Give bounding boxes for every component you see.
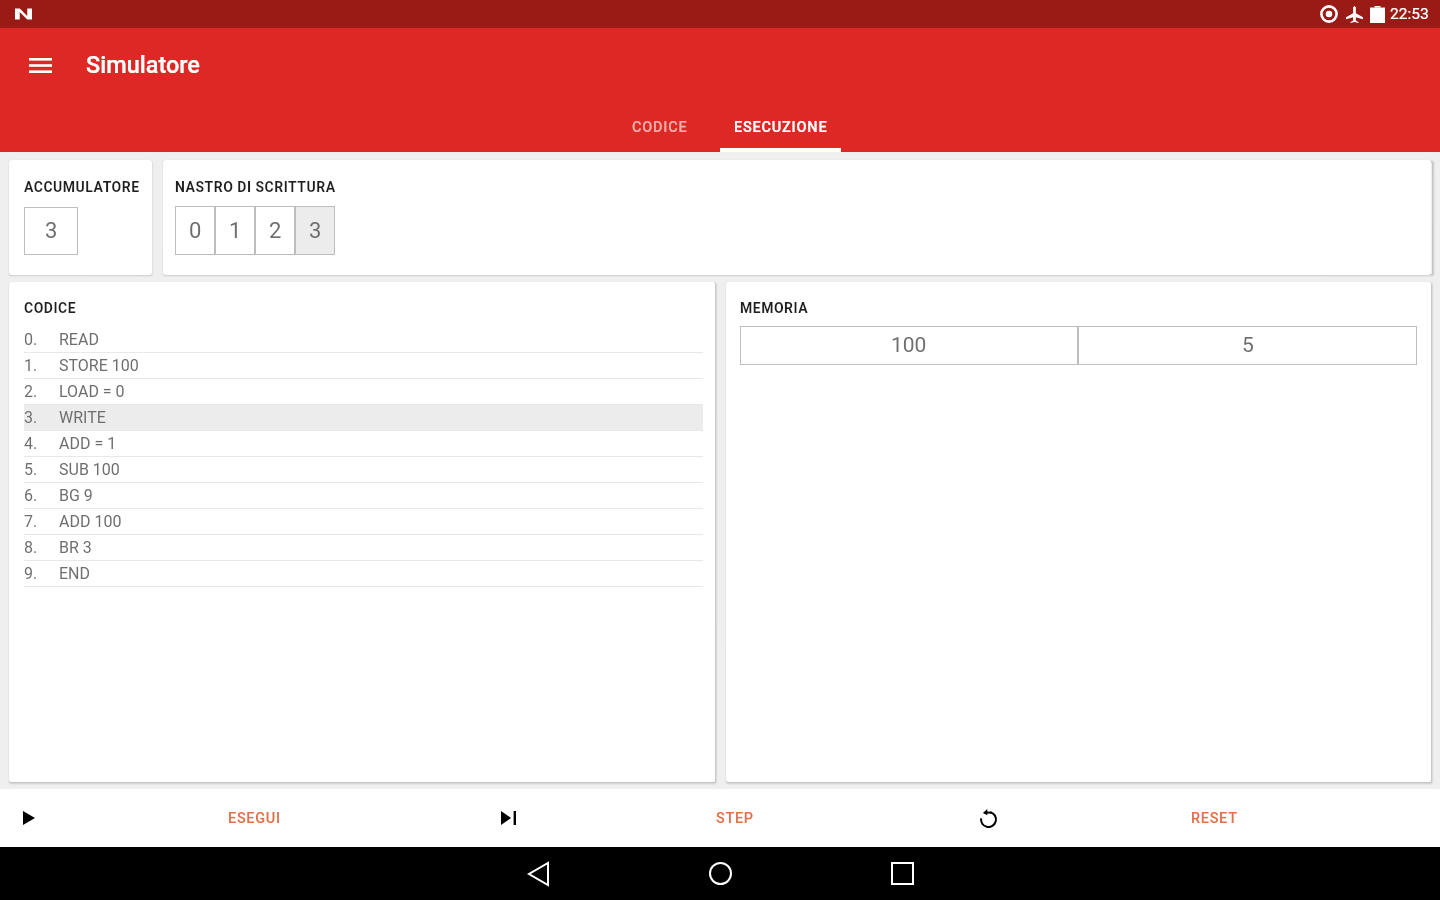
staticText: RESET [1191, 810, 1238, 827]
staticText: 0 [189, 218, 202, 244]
staticText: 3. [24, 408, 59, 427]
button[interactable]: STEP [480, 789, 960, 847]
staticText: Simulatore [86, 51, 200, 79]
button[interactable]: 1 [215, 206, 255, 255]
staticText: 1 [229, 218, 242, 244]
button[interactable]: 0. [24, 327, 703, 353]
staticText: 2. [24, 382, 59, 401]
button[interactable]: 8. [24, 535, 703, 561]
button[interactable]: 7. [24, 509, 703, 535]
staticText: 1. [24, 356, 59, 375]
button[interactable]: Recent apps [811, 847, 993, 900]
staticText: 2 [269, 218, 282, 244]
staticText: ESECUZIONE [734, 119, 828, 136]
staticText: NASTRO DI SCRITTURA [175, 179, 336, 195]
staticText: ESEGUI [228, 810, 281, 827]
staticText: 3 [309, 218, 322, 244]
button[interactable]: 100 [740, 326, 1078, 365]
staticText: 8. [24, 538, 59, 557]
staticText: READ [59, 330, 99, 349]
button[interactable]: 9. [24, 561, 703, 587]
staticText: 3 [45, 218, 58, 244]
staticText: BR 3 [59, 538, 92, 557]
staticText: SUB 100 [59, 460, 120, 479]
button[interactable]: 0 [175, 206, 215, 255]
staticText: 9. [24, 564, 59, 583]
button[interactable]: 3. [24, 405, 703, 431]
button[interactable]: 5 [1078, 326, 1417, 365]
button[interactable]: CODICE [599, 102, 720, 152]
button[interactable]: Back [447, 847, 629, 900]
button[interactable]: 1. [24, 353, 703, 379]
staticText: 4. [24, 434, 59, 453]
button[interactable]: 2 [255, 206, 295, 255]
button[interactable]: RESET [960, 789, 1440, 847]
staticText: 7. [24, 512, 59, 531]
staticText: 22:53 [1390, 5, 1429, 23]
staticText: 0. [24, 330, 59, 349]
staticText: 5. [24, 460, 59, 479]
staticText: WRITE [59, 408, 106, 427]
staticText: ADD 100 [59, 512, 122, 531]
button[interactable]: 3 [295, 206, 335, 255]
button[interactable]: ESECUZIONE [720, 102, 841, 152]
staticText: MEMORIA [740, 300, 809, 316]
staticText: CODICE [632, 119, 688, 136]
staticText: 100 [891, 333, 927, 358]
button[interactable]: 5. [24, 457, 703, 483]
staticText: STEP [716, 810, 754, 827]
staticText: 5 [1242, 333, 1254, 358]
staticText: 6. [24, 486, 59, 505]
button[interactable]: Home [629, 847, 811, 900]
staticText: ADD = 1 [59, 434, 117, 453]
staticText: ACCUMULATORE [24, 179, 140, 195]
button[interactable]: 2. [24, 379, 703, 405]
staticText: CODICE [24, 300, 77, 316]
button[interactable]: Open navigation menu [16, 41, 64, 89]
button[interactable]: 4. [24, 431, 703, 457]
staticText: STORE 100 [59, 356, 139, 375]
button[interactable]: 6. [24, 483, 703, 509]
staticText: BG 9 [59, 486, 93, 505]
staticText: LOAD = 0 [59, 382, 125, 401]
button[interactable]: ESEGUI [0, 789, 480, 847]
staticText: END [59, 564, 91, 583]
